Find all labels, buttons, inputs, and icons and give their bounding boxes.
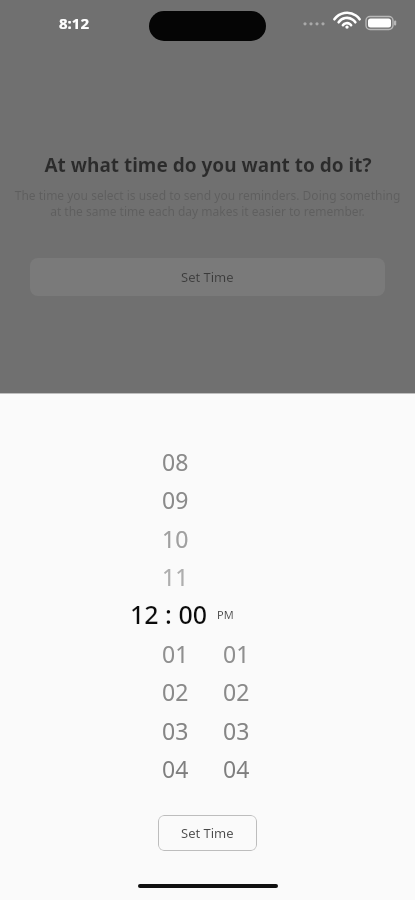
button[interactable]: 09 <box>135 483 215 515</box>
button[interactable]: Set Time <box>158 815 257 851</box>
button[interactable]: 03 <box>196 714 276 746</box>
staticText: 12 : 00 <box>130 597 208 631</box>
staticText: At what time do you want to do it? <box>44 152 372 178</box>
button[interactable]: 03 <box>135 714 215 746</box>
button[interactable]: 04 <box>196 752 276 784</box>
button[interactable]: 10 <box>135 522 215 554</box>
staticText: 03 <box>223 715 250 746</box>
staticText: 03 <box>162 715 189 746</box>
button[interactable]: 04 <box>135 752 215 784</box>
staticText: The time you select is used to send you … <box>14 187 401 220</box>
staticText: 01 <box>162 638 189 669</box>
staticText: Set Time <box>181 268 234 286</box>
button[interactable]: 08 <box>135 445 215 477</box>
button[interactable]: 01 <box>196 637 276 669</box>
staticText: 04 <box>223 753 250 784</box>
staticText: 01 <box>223 638 250 669</box>
staticText: 09 <box>162 484 189 515</box>
button[interactable]: 11 <box>135 560 215 592</box>
staticText: Set Time <box>181 824 234 842</box>
staticText: PM <box>217 607 234 622</box>
button[interactable]: Set Time <box>30 258 385 296</box>
staticText: 10 <box>162 523 189 554</box>
staticText: 08 <box>162 446 189 477</box>
staticText: 02 <box>162 676 189 707</box>
button[interactable]: 02 <box>135 675 215 707</box>
staticText: 02 <box>223 676 250 707</box>
button[interactable]: 12 : 00 <box>0 597 415 631</box>
staticText: 11 <box>162 561 189 592</box>
staticText: 8:12 <box>59 13 89 33</box>
button[interactable]: 02 <box>196 675 276 707</box>
button[interactable]: 01 <box>135 637 215 669</box>
staticText: 04 <box>162 753 189 784</box>
